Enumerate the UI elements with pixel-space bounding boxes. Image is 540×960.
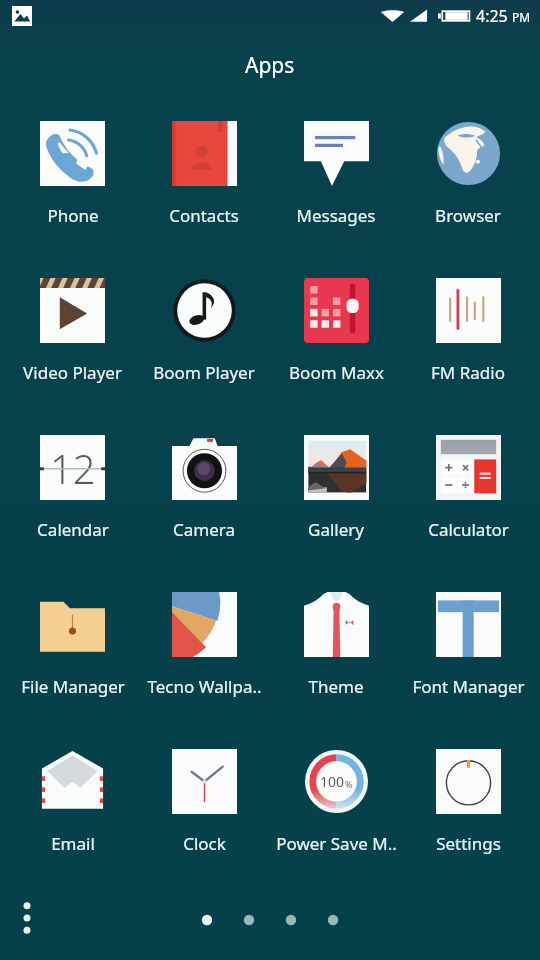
button[interactable]: Tecno Wallpa.. bbox=[138, 592, 270, 749]
staticText: Settings bbox=[436, 832, 501, 855]
button[interactable]: Phone bbox=[7, 121, 138, 278]
staticText: Calculator bbox=[428, 518, 509, 541]
staticText: Messages bbox=[296, 204, 376, 227]
button[interactable]: Gallery bbox=[270, 435, 402, 592]
staticText: Power Save M.. bbox=[276, 832, 397, 855]
staticText: Camera bbox=[173, 518, 235, 541]
staticText: FM Radio bbox=[431, 361, 505, 384]
staticText: File Manager bbox=[21, 675, 125, 698]
staticText: Apps bbox=[245, 51, 295, 80]
button[interactable]: Contacts bbox=[138, 121, 270, 278]
staticText: PM bbox=[512, 9, 531, 25]
button[interactable]: FM Radio bbox=[402, 278, 534, 435]
button[interactable]: Boom Maxx bbox=[270, 278, 402, 435]
button[interactable]: Email bbox=[7, 749, 138, 906]
button[interactable]: Settings bbox=[402, 749, 534, 906]
button[interactable]: Calculator bbox=[402, 435, 534, 592]
staticText: Theme bbox=[308, 675, 364, 698]
button[interactable]: Video Player bbox=[7, 278, 138, 435]
staticText: Font Manager bbox=[412, 675, 525, 698]
button[interactable]: Boom Player bbox=[138, 278, 270, 435]
button[interactable]: Font Manager bbox=[402, 592, 534, 749]
staticText: Phone bbox=[47, 204, 99, 227]
button[interactable]: Browser bbox=[402, 121, 534, 278]
staticText: % bbox=[345, 778, 353, 790]
button[interactable]: Theme bbox=[270, 592, 402, 749]
staticText: Browser bbox=[435, 204, 501, 227]
staticText: Email bbox=[51, 832, 95, 855]
button[interactable]: Camera bbox=[138, 435, 270, 592]
staticText: Gallery bbox=[308, 518, 364, 541]
button[interactable]: Messages bbox=[270, 121, 402, 278]
staticText: Video Player bbox=[23, 361, 122, 384]
staticText: 100 bbox=[320, 772, 345, 791]
button[interactable]: Clock bbox=[138, 749, 270, 906]
staticText: Tecno Wallpa.. bbox=[147, 675, 262, 698]
button[interactable]: 100 bbox=[270, 749, 402, 906]
button[interactable]: File Manager bbox=[7, 592, 138, 749]
staticText: Calendar bbox=[37, 518, 109, 541]
staticText: 4:25 bbox=[476, 5, 508, 27]
staticText: 12 bbox=[50, 441, 96, 495]
staticText: Boom Player bbox=[153, 361, 255, 384]
button[interactable]: More options bbox=[7, 898, 47, 938]
button[interactable]: 12 bbox=[7, 435, 138, 592]
staticText: Boom Maxx bbox=[289, 361, 384, 384]
staticText: Contacts bbox=[169, 204, 239, 227]
staticText: Clock bbox=[183, 832, 226, 855]
